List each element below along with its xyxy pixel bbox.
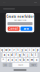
button[interactable]: x bbox=[34, 58, 39, 62]
button[interactable]: j bbox=[26, 53, 30, 57]
staticText: Cancel bbox=[9, 27, 19, 30]
button[interactable]: Save bbox=[20, 27, 32, 31]
button[interactable]: z bbox=[6, 58, 10, 62]
staticText: h bbox=[23, 53, 25, 57]
button[interactable]: x bbox=[10, 58, 14, 62]
staticText: i bbox=[29, 48, 30, 52]
staticText: m bbox=[31, 58, 33, 62]
button[interactable]: i bbox=[28, 48, 32, 52]
button[interactable]: ^ bbox=[1, 58, 6, 62]
button[interactable]: f bbox=[14, 53, 18, 57]
button[interactable]: m bbox=[30, 58, 34, 62]
button[interactable] bbox=[8, 63, 12, 67]
staticText: o bbox=[33, 48, 35, 52]
button[interactable]: l bbox=[34, 53, 37, 57]
button[interactable]: r bbox=[12, 48, 16, 52]
staticText: Save bbox=[23, 27, 29, 30]
staticText: k bbox=[31, 53, 32, 57]
button[interactable]: v bbox=[18, 58, 22, 62]
button[interactable]: q bbox=[0, 48, 4, 52]
staticText: n bbox=[27, 58, 29, 62]
staticText: l bbox=[35, 53, 36, 57]
staticText: space bbox=[18, 64, 23, 66]
staticText: g bbox=[19, 53, 21, 57]
button[interactable]: space bbox=[12, 63, 29, 67]
staticText: w bbox=[5, 48, 7, 52]
button[interactable]: h bbox=[22, 53, 26, 57]
staticText: s bbox=[8, 53, 9, 57]
button[interactable]: t bbox=[16, 48, 20, 52]
staticText: r bbox=[14, 48, 15, 52]
button[interactable]: Cancel bbox=[8, 27, 19, 31]
button[interactable]: y bbox=[20, 48, 24, 52]
staticText: z bbox=[8, 58, 9, 62]
staticText: u bbox=[25, 48, 27, 52]
staticText: q bbox=[1, 48, 3, 52]
staticText: 123 bbox=[4, 64, 7, 66]
button[interactable]: a bbox=[2, 53, 6, 57]
staticText: b bbox=[23, 58, 25, 62]
staticText: x bbox=[36, 58, 37, 62]
button[interactable]: s bbox=[6, 53, 10, 57]
staticText: f bbox=[16, 53, 17, 57]
button[interactable]: e bbox=[8, 48, 12, 52]
button[interactable]: c bbox=[14, 58, 18, 62]
button[interactable]: d bbox=[10, 53, 14, 57]
staticText: Create new folder bbox=[6, 15, 33, 18]
button[interactable]: 123 bbox=[3, 63, 8, 67]
staticText: return bbox=[31, 64, 36, 66]
staticText: j bbox=[27, 53, 28, 57]
button[interactable]: k bbox=[30, 53, 34, 57]
staticText: d bbox=[11, 53, 13, 57]
staticText: e bbox=[9, 48, 11, 52]
button[interactable]: return bbox=[30, 63, 37, 67]
button[interactable]: u bbox=[24, 48, 28, 52]
staticText: a bbox=[4, 53, 5, 57]
staticText: x bbox=[12, 58, 13, 62]
button[interactable]: o bbox=[32, 48, 35, 52]
button[interactable]: g bbox=[18, 53, 22, 57]
button[interactable]: n bbox=[26, 58, 30, 62]
button[interactable]: w bbox=[4, 48, 8, 52]
button[interactable]: b bbox=[22, 58, 26, 62]
staticText: ^ bbox=[3, 58, 5, 62]
staticText: p bbox=[37, 48, 39, 52]
staticText: Enter a folder name bbox=[13, 19, 26, 21]
button[interactable]: p bbox=[36, 48, 39, 52]
